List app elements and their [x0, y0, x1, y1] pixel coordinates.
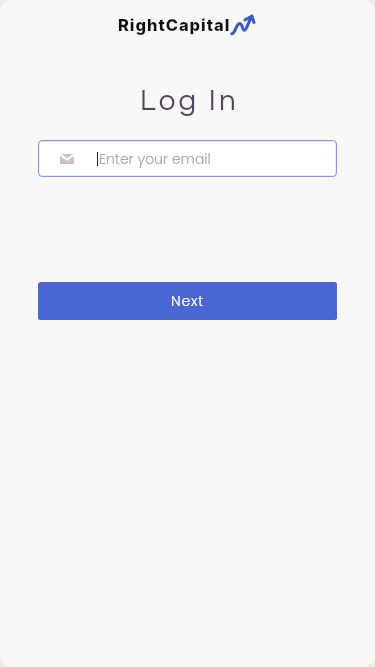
staticText: Log In [2, 86, 375, 116]
other: Email [60, 154, 74, 164]
staticText: RightCapital [118, 15, 231, 35]
button[interactable]: Next [38, 282, 337, 320]
button[interactable]: Email [38, 140, 337, 177]
staticText: Next [171, 291, 204, 311]
staticText: Enter your email [99, 149, 211, 169]
